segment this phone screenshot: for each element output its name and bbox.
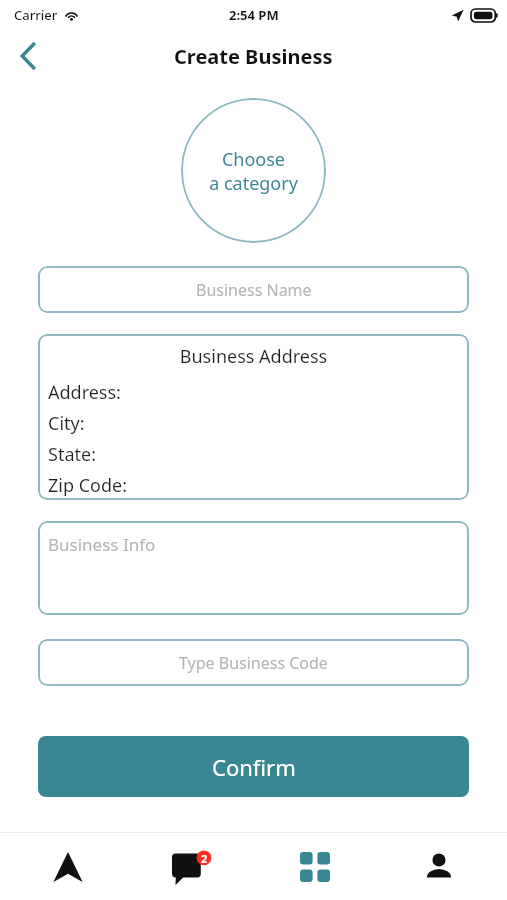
- staticText: 2: [201, 851, 208, 866]
- staticText: Business Name: [196, 279, 312, 301]
- button[interactable]: Business Name: [38, 266, 469, 313]
- staticText: Type Business Code: [179, 652, 328, 674]
- button[interactable]: Confirm: [38, 736, 469, 797]
- button[interactable]: Messages: [137, 833, 247, 900]
- button[interactable]: Back: [6, 34, 50, 78]
- button[interactable]: Navigate: [13, 833, 123, 900]
- staticText: Carrier: [14, 6, 58, 24]
- button[interactable]: Categories: [260, 833, 370, 900]
- staticText: Confirm: [212, 752, 296, 782]
- staticText: Zip Code:: [48, 473, 128, 498]
- staticText: State:: [48, 442, 96, 467]
- staticText: City:: [48, 411, 85, 436]
- staticText: Business Info: [48, 533, 156, 556]
- button[interactable]: Business Address: [38, 334, 469, 500]
- staticText: Choose a category: [209, 147, 298, 195]
- button[interactable]: Choose a category: [181, 98, 326, 243]
- button[interactable]: Profile: [384, 833, 494, 900]
- button[interactable]: Type Business Code: [38, 639, 469, 686]
- staticText: Business Address: [38, 344, 469, 369]
- button[interactable]: Business Info: [38, 521, 469, 615]
- staticText: Create Business: [174, 43, 333, 70]
- staticText: 2:54 PM: [229, 6, 279, 24]
- staticText: Address:: [48, 380, 121, 405]
